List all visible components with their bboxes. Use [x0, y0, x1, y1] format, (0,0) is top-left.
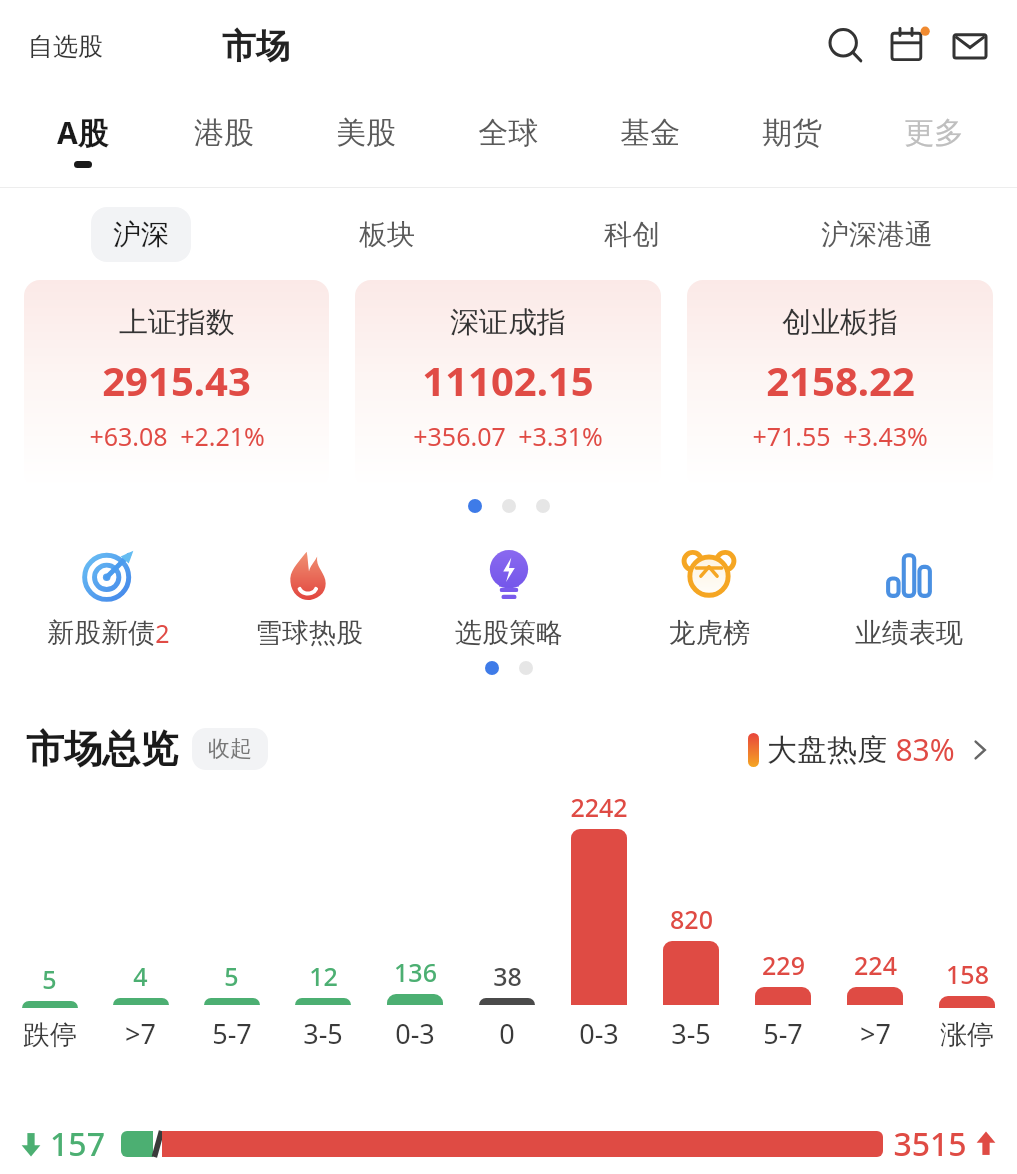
- button[interactable]: A股: [12, 92, 153, 188]
- staticText: 11102.15: [422, 353, 594, 407]
- staticText: 3-5: [671, 1015, 711, 1052]
- button[interactable]: 深证成指: [355, 280, 661, 488]
- staticText: 3515: [893, 1122, 967, 1166]
- staticText: >7: [860, 1015, 891, 1052]
- staticText: 83%: [895, 729, 955, 770]
- staticText: 0-3: [579, 1015, 619, 1052]
- button[interactable]: 科创: [509, 188, 754, 280]
- button[interactable]: 选股策略: [409, 546, 609, 650]
- staticText: 5-7: [212, 1015, 252, 1052]
- button[interactable]: 业绩表现: [809, 546, 1009, 650]
- staticText: 大盘热度: [767, 731, 887, 769]
- button[interactable]: 雪球热股: [209, 546, 409, 650]
- button[interactable]: 美股: [295, 92, 437, 188]
- staticText: +3.43%: [843, 419, 928, 453]
- button[interactable]: Search: [815, 15, 877, 77]
- staticText: 上证指数: [119, 304, 235, 341]
- staticText: +3.31%: [518, 419, 603, 453]
- staticText: 更多: [904, 114, 964, 152]
- staticText: 4: [133, 959, 148, 993]
- button[interactable]: 全球: [437, 92, 579, 188]
- staticText: 涨停: [940, 1018, 994, 1052]
- staticText: 自选股: [28, 31, 103, 62]
- button[interactable]: 自选股: [22, 25, 109, 68]
- staticText: 跌停: [23, 1018, 77, 1052]
- staticText: 沪深港通: [821, 217, 933, 252]
- staticText: 5: [42, 962, 57, 996]
- staticText: 820: [670, 902, 713, 936]
- button[interactable]: Messages: [939, 15, 1001, 77]
- button[interactable]: 基金: [579, 92, 721, 188]
- staticText: 158: [946, 957, 989, 991]
- staticText: 市场总览: [26, 725, 178, 773]
- button[interactable]: 创业板指: [687, 280, 993, 488]
- staticText: 龙虎榜: [669, 616, 750, 650]
- staticText: 157: [50, 1122, 105, 1166]
- button[interactable]: 收起: [192, 728, 268, 770]
- staticText: +63.08: [89, 419, 168, 453]
- staticText: A股: [57, 112, 108, 153]
- staticText: 港股: [194, 114, 254, 152]
- staticText: 全球: [478, 114, 538, 152]
- staticText: 12: [309, 959, 338, 993]
- staticText: 收起: [208, 735, 252, 763]
- staticText: +356.07: [413, 419, 506, 453]
- button[interactable]: 大盘热度: [748, 729, 991, 770]
- staticText: 2: [155, 616, 170, 650]
- staticText: 136: [394, 955, 437, 989]
- staticText: 2915.43: [102, 353, 251, 407]
- button[interactable]: 沪深: [18, 188, 264, 280]
- button[interactable]: 龙虎榜: [609, 546, 809, 650]
- staticText: 224: [854, 948, 897, 982]
- staticText: 美股: [336, 114, 396, 152]
- button[interactable]: Calendar: [877, 15, 939, 77]
- staticText: 深证成指: [450, 304, 566, 341]
- button[interactable]: 港股: [153, 92, 295, 188]
- button[interactable]: 期货: [721, 92, 863, 188]
- staticText: 选股策略: [455, 616, 563, 650]
- button[interactable]: 更多: [863, 92, 1005, 188]
- staticText: 新股新债: [47, 616, 155, 650]
- staticText: +2.21%: [180, 419, 265, 453]
- staticText: 业绩表现: [855, 616, 963, 650]
- staticText: 2242: [570, 790, 628, 824]
- button[interactable]: 板块: [264, 188, 509, 280]
- staticText: 229: [762, 948, 805, 982]
- staticText: 2158.22: [766, 353, 915, 407]
- staticText: 0: [499, 1015, 515, 1052]
- button[interactable]: 上证指数: [24, 280, 329, 488]
- staticText: 基金: [620, 114, 680, 152]
- staticText: 0-3: [395, 1015, 435, 1052]
- staticText: 科创: [604, 217, 660, 252]
- button[interactable]: 沪深港通: [754, 188, 999, 280]
- staticText: 市场: [222, 25, 290, 68]
- staticText: 雪球热股: [255, 616, 363, 650]
- staticText: 沪深: [113, 217, 169, 252]
- staticText: 5: [224, 959, 239, 993]
- staticText: +71.55: [752, 419, 831, 453]
- staticText: 板块: [359, 217, 415, 252]
- staticText: 5-7: [763, 1015, 803, 1052]
- staticText: 创业板指: [782, 304, 898, 341]
- staticText: 3-5: [303, 1015, 343, 1052]
- staticText: 38: [493, 959, 522, 993]
- button[interactable]: 新股新债: [8, 546, 209, 650]
- staticText: >7: [125, 1015, 156, 1052]
- staticText: 期货: [762, 114, 822, 152]
